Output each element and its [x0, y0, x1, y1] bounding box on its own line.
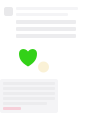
button[interactable]: Author — [0, 0, 91, 16]
button[interactable]: Read more — [0, 79, 58, 113]
